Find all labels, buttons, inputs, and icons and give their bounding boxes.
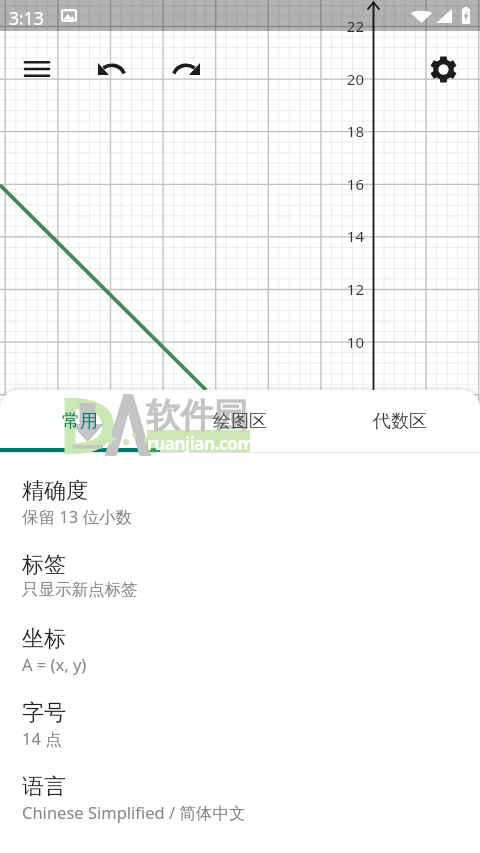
staticText: 字号 bbox=[22, 699, 66, 727]
staticText: 14 bbox=[328, 226, 364, 246]
staticText: 18 bbox=[328, 121, 364, 141]
staticText: 20 bbox=[328, 69, 364, 89]
staticText: 常用 bbox=[62, 410, 98, 433]
staticText: 保留 13 位小数 bbox=[22, 505, 132, 528]
staticText: 10 bbox=[328, 332, 364, 352]
button[interactable]: Redo bbox=[162, 47, 210, 91]
button[interactable]: 标签 bbox=[0, 531, 480, 605]
staticText: 16 bbox=[328, 174, 364, 194]
button[interactable]: 坐标 bbox=[0, 605, 480, 679]
staticText: A = (x, y) bbox=[22, 653, 87, 675]
staticText: 12 bbox=[328, 279, 364, 299]
staticText: Chinese Simplified / 简体中文 bbox=[22, 801, 246, 824]
button[interactable]: 精确度 bbox=[0, 457, 480, 531]
staticText: 语言 bbox=[22, 773, 66, 801]
button[interactable]: 语言 bbox=[0, 753, 480, 827]
button[interactable]: 代数区 bbox=[320, 390, 480, 452]
staticText: 坐标 bbox=[22, 625, 66, 653]
button[interactable]: Undo bbox=[87, 47, 135, 91]
staticText: 3:13 bbox=[9, 6, 44, 30]
button[interactable]: Menu bbox=[13, 47, 61, 91]
staticText: 精确度 bbox=[22, 477, 88, 505]
staticText: 代数区 bbox=[373, 410, 427, 433]
staticText: 14 点 bbox=[22, 727, 62, 750]
button[interactable]: Settings bbox=[419, 45, 467, 93]
staticText: ruanjian.com bbox=[147, 432, 254, 455]
staticText: 标签 bbox=[22, 551, 66, 579]
staticText: 绘图区 bbox=[213, 410, 267, 433]
button[interactable]: 绘图区 bbox=[160, 390, 320, 452]
staticText: 22 bbox=[328, 16, 364, 36]
staticText: 软件园 bbox=[146, 394, 248, 437]
button[interactable]: 常用 bbox=[0, 390, 160, 452]
button[interactable]: 字号 bbox=[0, 679, 480, 753]
staticText: 只显示新点标签 bbox=[22, 579, 138, 600]
